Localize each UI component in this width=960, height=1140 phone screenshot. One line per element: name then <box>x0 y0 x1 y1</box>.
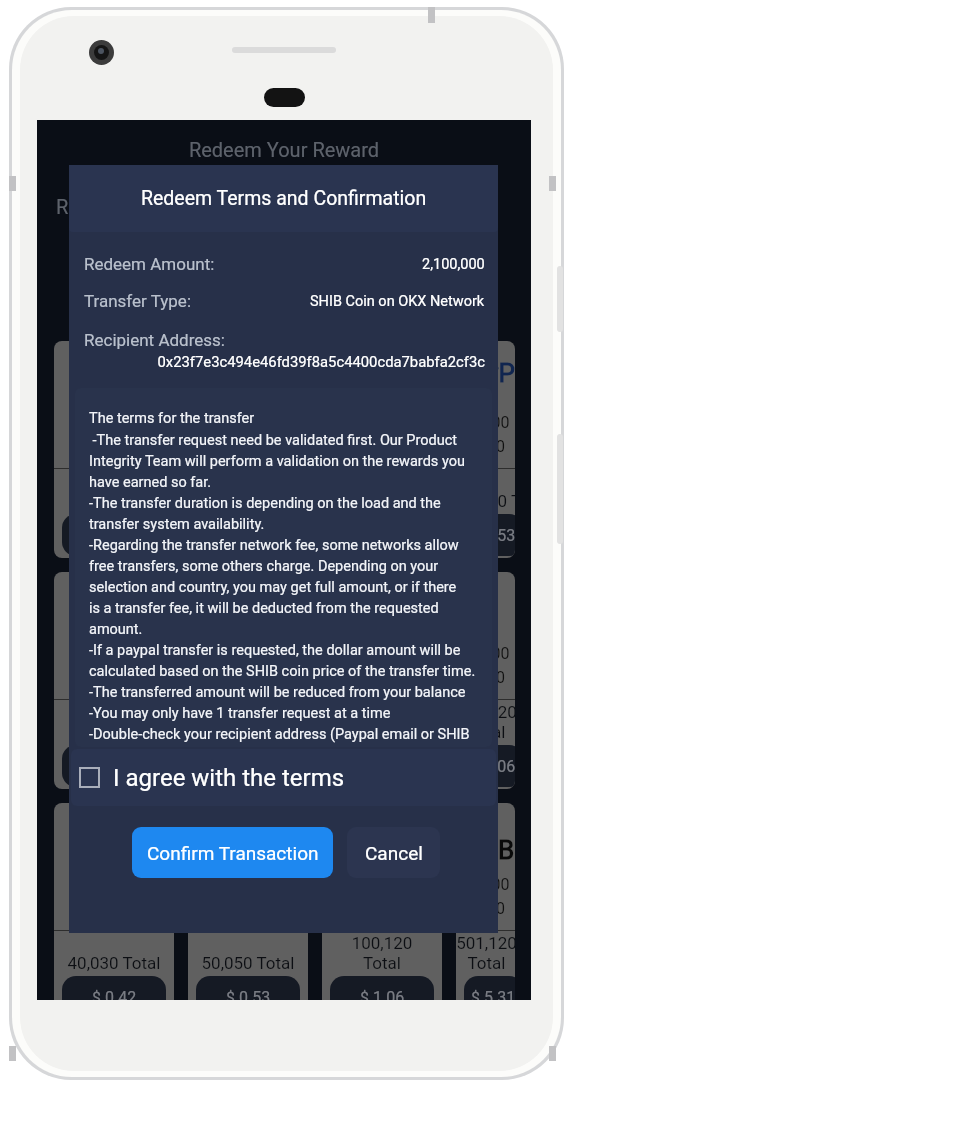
button[interactable]: $ 1.06 <box>330 976 434 1000</box>
button[interactable]: SHIB <box>54 803 174 1000</box>
staticText: $ 1.06 <box>92 526 137 545</box>
staticText: 10,000 <box>456 413 515 432</box>
staticText: 10,000 <box>188 413 308 432</box>
staticText: 50,050 Total <box>322 722 442 742</box>
staticText: 10,000 <box>188 875 308 894</box>
button[interactable]: N <box>54 341 174 558</box>
staticText: 100,120 Total <box>54 471 174 511</box>
staticText: Rewards <box>56 195 134 218</box>
staticText: Redeem Amount: <box>84 254 215 274</box>
button[interactable]: $ 1.06 <box>62 514 166 556</box>
staticText: Redeem Terms and Confirmation <box>141 187 427 210</box>
button[interactable]: SHIB <box>54 572 174 789</box>
staticText: 10,000 <box>456 875 515 894</box>
staticText: SHIB <box>85 604 143 634</box>
staticText: $ 0.42 <box>226 757 271 776</box>
button[interactable]: $ 0.42 <box>196 745 300 787</box>
staticText: 40,030 Total <box>188 722 308 742</box>
staticText: $ 5.31 <box>92 757 137 776</box>
staticText: 50,050 Total <box>188 953 308 973</box>
button[interactable]: SHIB <box>188 572 308 789</box>
staticText: 1,000 <box>456 437 515 456</box>
staticText: 501,120 Total <box>54 702 174 742</box>
staticText: 1,000 <box>322 437 442 456</box>
staticText: Transfer Type: <box>84 291 191 311</box>
staticText: 501,120 Total <box>456 933 515 973</box>
staticText: Cancel <box>365 842 423 864</box>
button[interactable]: SHIB <box>456 803 515 1000</box>
staticText: The terms for the transfer -The transfer… <box>89 410 476 747</box>
staticText: 501,120 Total <box>188 471 308 511</box>
staticText: 1,000 <box>54 899 174 918</box>
staticText: 40,030 Total <box>322 491 442 511</box>
staticText: SHIB <box>457 835 515 865</box>
staticText: 1,000 <box>54 668 174 687</box>
staticText: $ 0.42 <box>360 526 405 545</box>
staticText: $ 0.42 <box>92 988 137 1000</box>
button[interactable]: Confirm Transaction <box>132 827 333 878</box>
staticText: 1,000 <box>188 668 308 687</box>
staticText: 1,000 <box>456 899 515 918</box>
staticText: 10,000 <box>54 644 174 663</box>
staticText: $ 5.31 <box>471 988 515 1000</box>
button[interactable]: N <box>456 572 515 789</box>
button[interactable]: $ 0.53 <box>196 976 300 1000</box>
staticText: PayPal <box>456 358 515 418</box>
staticText: 1,000 <box>54 437 174 456</box>
staticText: 100,120 Total <box>456 702 515 742</box>
staticText: 10,000 <box>322 644 442 663</box>
staticText: 10,000 <box>54 875 174 894</box>
button[interactable]: Cancel <box>347 827 440 878</box>
staticText: 10,000 <box>188 644 308 663</box>
button[interactable]: PayPal <box>188 803 308 1000</box>
button[interactable]: $ 0.42 <box>62 976 166 1000</box>
staticText: N <box>373 835 392 865</box>
staticText: PayPal <box>208 835 288 865</box>
staticText: PayPal <box>342 604 422 634</box>
button[interactable]: $ 5.31 <box>62 745 166 787</box>
button[interactable]: $ 5.31 <box>464 976 515 1000</box>
staticText: 2,100,000 <box>422 256 485 273</box>
staticText: 10,000 <box>456 644 515 663</box>
staticText: 1,000 <box>188 437 308 456</box>
staticText: Confirm Transaction <box>147 842 319 864</box>
button[interactable]: $ 1.06 <box>464 745 515 787</box>
staticText: $ 5.31 <box>226 526 271 545</box>
staticText: SHIB <box>219 604 277 634</box>
staticText: 10,000 <box>54 413 174 432</box>
staticText: 0x23f7e3c494e46fd39f8a5c4400cda7babfa2cf… <box>84 353 485 370</box>
staticText: $ 1.06 <box>360 988 405 1000</box>
staticText: 1,000 <box>322 668 442 687</box>
button[interactable]: SHIB <box>322 341 442 558</box>
button[interactable]: $ 0.53 <box>330 745 434 787</box>
button[interactable]: $ 0.53 <box>464 514 515 556</box>
button[interactable]: SHIB <box>188 341 308 558</box>
staticText: $ 0.53 <box>471 526 515 545</box>
staticText: SHIB <box>85 835 143 865</box>
staticText: SHIB Coin on OKX Network <box>310 293 485 310</box>
staticText: $ 1.06 <box>471 757 515 776</box>
staticText: 100,120 Total <box>322 933 442 973</box>
button[interactable]: PayPal <box>456 341 515 558</box>
staticText: 1,000 <box>456 668 515 687</box>
staticText: Recipient Address: <box>84 330 225 350</box>
staticText: 50,050 Total <box>456 491 515 511</box>
button[interactable]: N <box>322 803 442 1000</box>
button[interactable]: I agree with the terms <box>71 749 496 806</box>
button[interactable]: PayPal <box>322 572 442 789</box>
staticText: I agree with the terms <box>113 764 345 792</box>
button[interactable]: $ 0.42 <box>330 514 434 556</box>
staticText: 40,030 Total <box>54 953 174 973</box>
button[interactable]: $ 5.31 <box>196 514 300 556</box>
staticText: $ 0.53 <box>226 988 271 1000</box>
staticText: 10,000 <box>322 875 442 894</box>
staticText: Redeem Your Reward <box>37 138 531 161</box>
